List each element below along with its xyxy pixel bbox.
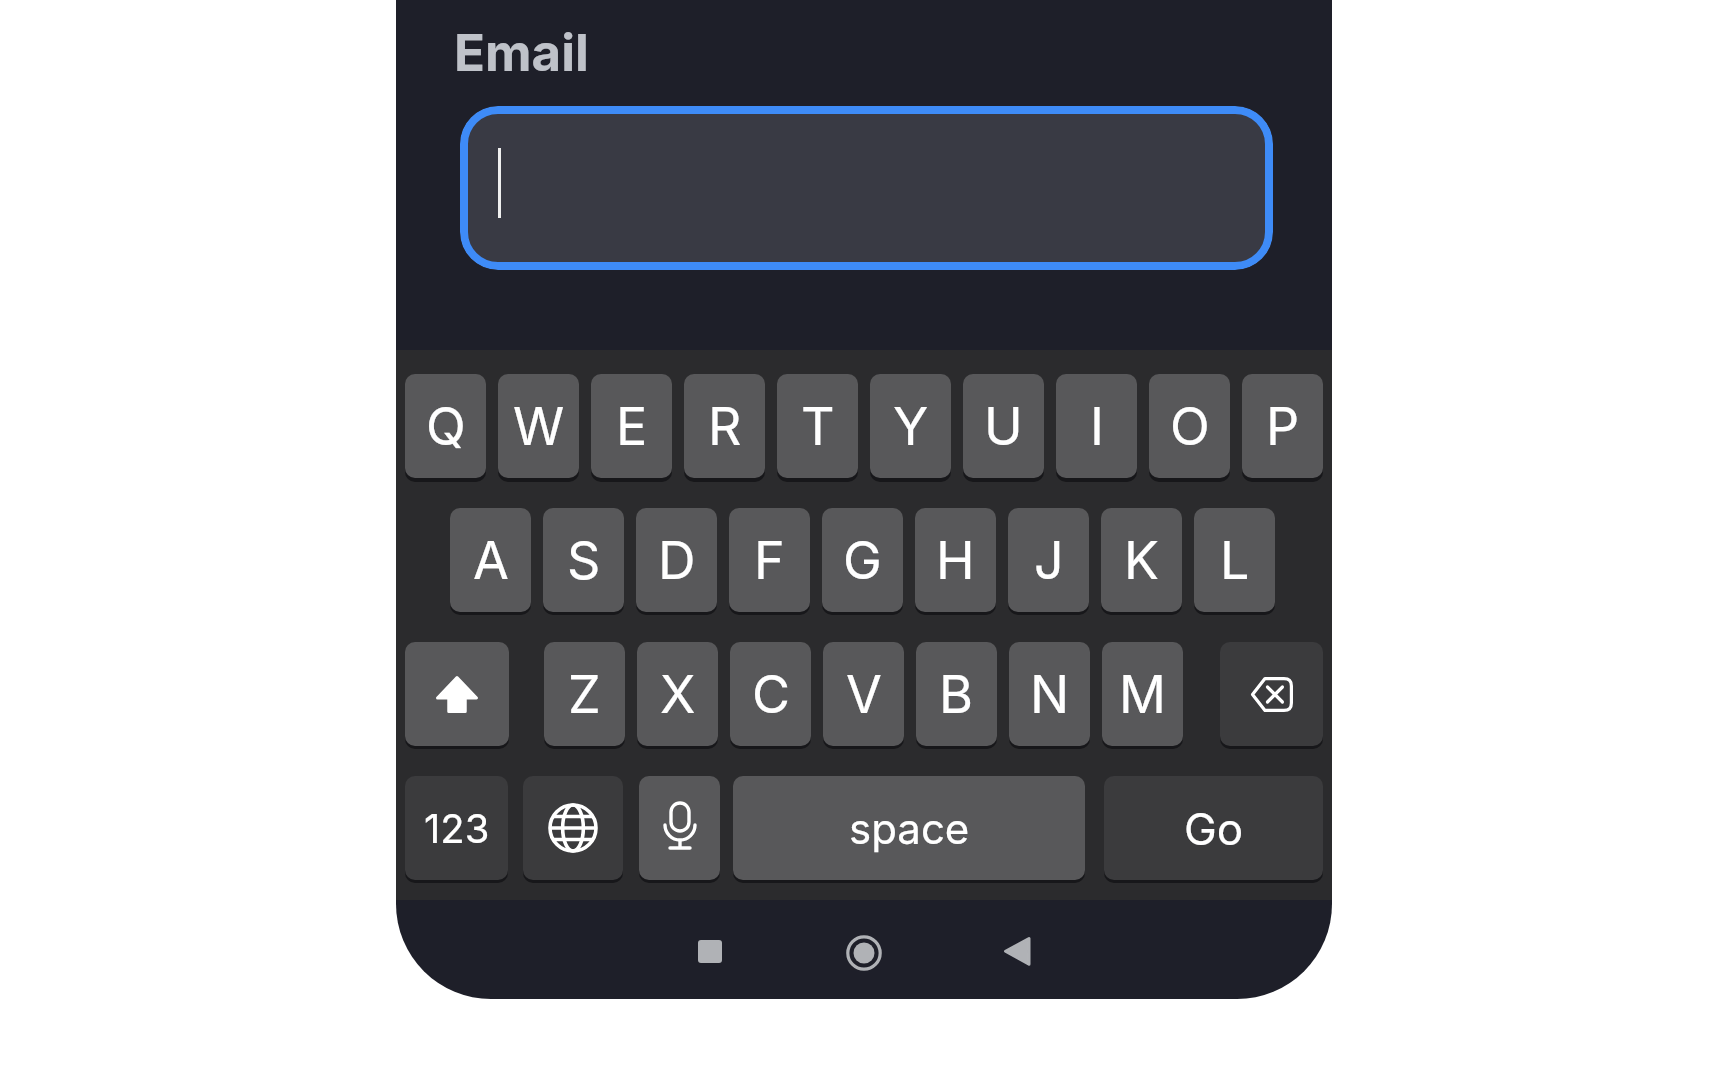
staticText: B bbox=[939, 663, 974, 726]
button[interactable]: D bbox=[636, 508, 717, 612]
button[interactable]: T bbox=[777, 374, 858, 478]
staticText: F bbox=[754, 529, 785, 592]
button[interactable]: K bbox=[1101, 508, 1182, 612]
button[interactable]: X bbox=[637, 642, 718, 746]
button[interactable] bbox=[846, 935, 882, 971]
staticText: R bbox=[708, 395, 742, 458]
staticText: V bbox=[846, 663, 882, 726]
staticText: S bbox=[567, 529, 601, 592]
button[interactable]: L bbox=[1194, 508, 1275, 612]
button[interactable]: H bbox=[915, 508, 996, 612]
button[interactable]: 123 bbox=[405, 776, 508, 880]
staticText: D bbox=[658, 529, 696, 592]
staticText: Z bbox=[568, 663, 601, 726]
staticText: W bbox=[513, 395, 565, 458]
button[interactable]: N bbox=[1009, 642, 1090, 746]
staticText: Q bbox=[426, 395, 466, 458]
button[interactable]: P bbox=[1242, 374, 1323, 478]
button[interactable]: S bbox=[543, 508, 624, 612]
button[interactable]: M bbox=[1102, 642, 1183, 746]
button[interactable] bbox=[1004, 937, 1030, 966]
button[interactable]: O bbox=[1149, 374, 1230, 478]
staticText: E bbox=[616, 395, 648, 458]
button[interactable]: W bbox=[498, 374, 579, 478]
staticText: A bbox=[473, 529, 509, 592]
staticText: C bbox=[752, 663, 790, 726]
button[interactable]: I bbox=[1056, 374, 1137, 478]
staticText: P bbox=[1266, 395, 1300, 458]
button[interactable]: Y bbox=[870, 374, 951, 478]
button[interactable]: C bbox=[730, 642, 811, 746]
button[interactable]: B bbox=[916, 642, 997, 746]
button[interactable]: A bbox=[450, 508, 531, 612]
staticText: Email bbox=[454, 22, 589, 84]
staticText: X bbox=[660, 663, 696, 726]
staticText: T bbox=[801, 395, 835, 458]
button[interactable] bbox=[698, 940, 722, 963]
staticText: O bbox=[1170, 395, 1210, 458]
button[interactable]: E bbox=[591, 374, 672, 478]
staticText: J bbox=[1034, 529, 1064, 592]
staticText: K bbox=[1124, 529, 1159, 592]
staticText: space bbox=[849, 803, 970, 854]
button[interactable]: Go bbox=[1104, 776, 1323, 880]
button[interactable] bbox=[1220, 642, 1323, 746]
button[interactable]: V bbox=[823, 642, 904, 746]
button[interactable]: Z bbox=[544, 642, 625, 746]
staticText: 123 bbox=[424, 804, 490, 852]
staticText: G bbox=[843, 529, 882, 592]
button[interactable]: U bbox=[963, 374, 1044, 478]
button[interactable] bbox=[639, 776, 720, 880]
button[interactable]: space bbox=[733, 776, 1085, 880]
staticText: L bbox=[1220, 529, 1250, 592]
button[interactable] bbox=[460, 106, 1273, 270]
button[interactable]: G bbox=[822, 508, 903, 612]
button[interactable]: J bbox=[1008, 508, 1089, 612]
button[interactable]: F bbox=[729, 508, 810, 612]
button[interactable]: Q bbox=[405, 374, 486, 478]
staticText: Y bbox=[893, 395, 929, 458]
staticText: U bbox=[984, 395, 1023, 458]
button[interactable] bbox=[405, 642, 509, 746]
staticText: N bbox=[1030, 663, 1070, 726]
staticText: I bbox=[1090, 395, 1104, 458]
staticText: Go bbox=[1184, 802, 1244, 855]
button[interactable]: R bbox=[684, 374, 765, 478]
staticText: M bbox=[1119, 663, 1166, 726]
staticText: H bbox=[936, 529, 975, 592]
button[interactable] bbox=[523, 776, 623, 880]
